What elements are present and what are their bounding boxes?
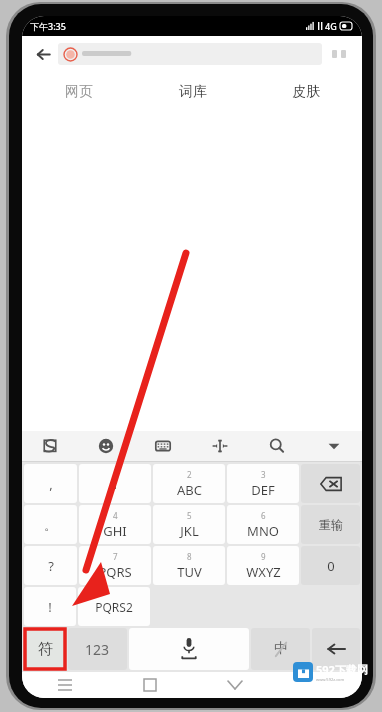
- button[interactable]: ,: [24, 464, 77, 503]
- staticText: WXYZ: [246, 563, 281, 581]
- staticText: 词库: [179, 83, 207, 101]
- button[interactable]: PQRS2: [78, 587, 150, 626]
- staticText: 3: [261, 469, 266, 480]
- staticText: DEF: [251, 481, 275, 499]
- button[interactable]: 1: [79, 464, 151, 503]
- staticText: 123: [85, 640, 110, 659]
- staticText: 中: [274, 640, 288, 658]
- button[interactable]: 重输: [301, 505, 360, 544]
- staticText: 592下载网: [316, 662, 368, 677]
- button[interactable]: Home: [107, 672, 192, 698]
- button[interactable]: 3: [227, 464, 299, 503]
- button[interactable]: Collapse: [305, 431, 362, 461]
- staticText: 4G: [325, 20, 337, 32]
- button[interactable]: Recents: [22, 672, 107, 698]
- button[interactable]: Voice input and space: [129, 628, 249, 670]
- button[interactable]: [58, 43, 322, 65]
- button[interactable]: 词库: [136, 72, 249, 112]
- staticText: 0: [327, 557, 335, 575]
- button[interactable]: 符: [24, 628, 66, 670]
- button[interactable]: 4: [79, 505, 151, 544]
- staticText: JKL: [180, 522, 199, 540]
- staticText: !: [48, 598, 52, 616]
- button[interactable]: 8: [153, 546, 225, 585]
- staticText: TUV: [177, 563, 202, 581]
- button[interactable]: 2: [153, 464, 225, 503]
- button[interactable]: More: [322, 49, 356, 59]
- button[interactable]: 6: [227, 505, 299, 544]
- button[interactable]: 0: [301, 546, 360, 585]
- staticText: 5: [187, 510, 192, 521]
- button[interactable]: 123: [68, 628, 127, 670]
- staticText: 9: [261, 551, 266, 562]
- staticText: 网页: [65, 83, 93, 101]
- button[interactable]: Cursor: [191, 431, 248, 461]
- staticText: 皮肤: [292, 83, 320, 101]
- button[interactable]: Keyboard layout: [134, 431, 191, 461]
- staticText: ?: [48, 557, 54, 575]
- staticText: 。: [44, 517, 57, 533]
- button[interactable]: 皮肤: [249, 72, 362, 112]
- staticText: 1: [111, 475, 119, 493]
- staticText: ABC: [177, 481, 202, 499]
- staticText: 重输: [319, 517, 343, 532]
- button[interactable]: 。: [24, 505, 77, 544]
- staticText: 7: [113, 551, 118, 562]
- staticText: 符: [38, 640, 53, 659]
- button[interactable]: Emoji: [78, 431, 134, 461]
- button[interactable]: 7: [79, 546, 151, 585]
- button[interactable]: Search: [248, 431, 305, 461]
- staticText: PQRS2: [95, 599, 133, 615]
- button[interactable]: 网页: [22, 72, 136, 112]
- button[interactable]: Back: [28, 39, 58, 69]
- button[interactable]: Backspace: [301, 464, 360, 503]
- button[interactable]: ?: [24, 546, 77, 585]
- staticText: PQRS: [98, 563, 132, 581]
- button[interactable]: 9: [227, 546, 299, 585]
- staticText: 6: [261, 510, 266, 521]
- button[interactable]: Enter: [312, 628, 360, 670]
- staticText: www.592z.com: [316, 677, 345, 682]
- staticText: 4: [113, 510, 118, 521]
- button[interactable]: 5: [153, 505, 225, 544]
- staticText: GHI: [103, 522, 127, 540]
- button[interactable]: !: [24, 587, 76, 626]
- staticText: 8: [187, 551, 192, 562]
- staticText: ,: [49, 475, 53, 493]
- staticText: 下午3:35: [30, 20, 66, 32]
- button[interactable]: 中: [251, 628, 310, 670]
- button[interactable]: Sogou: [22, 431, 78, 461]
- button[interactable]: Back: [192, 672, 277, 698]
- staticText: MNO: [247, 522, 279, 540]
- staticText: 2: [187, 469, 192, 480]
